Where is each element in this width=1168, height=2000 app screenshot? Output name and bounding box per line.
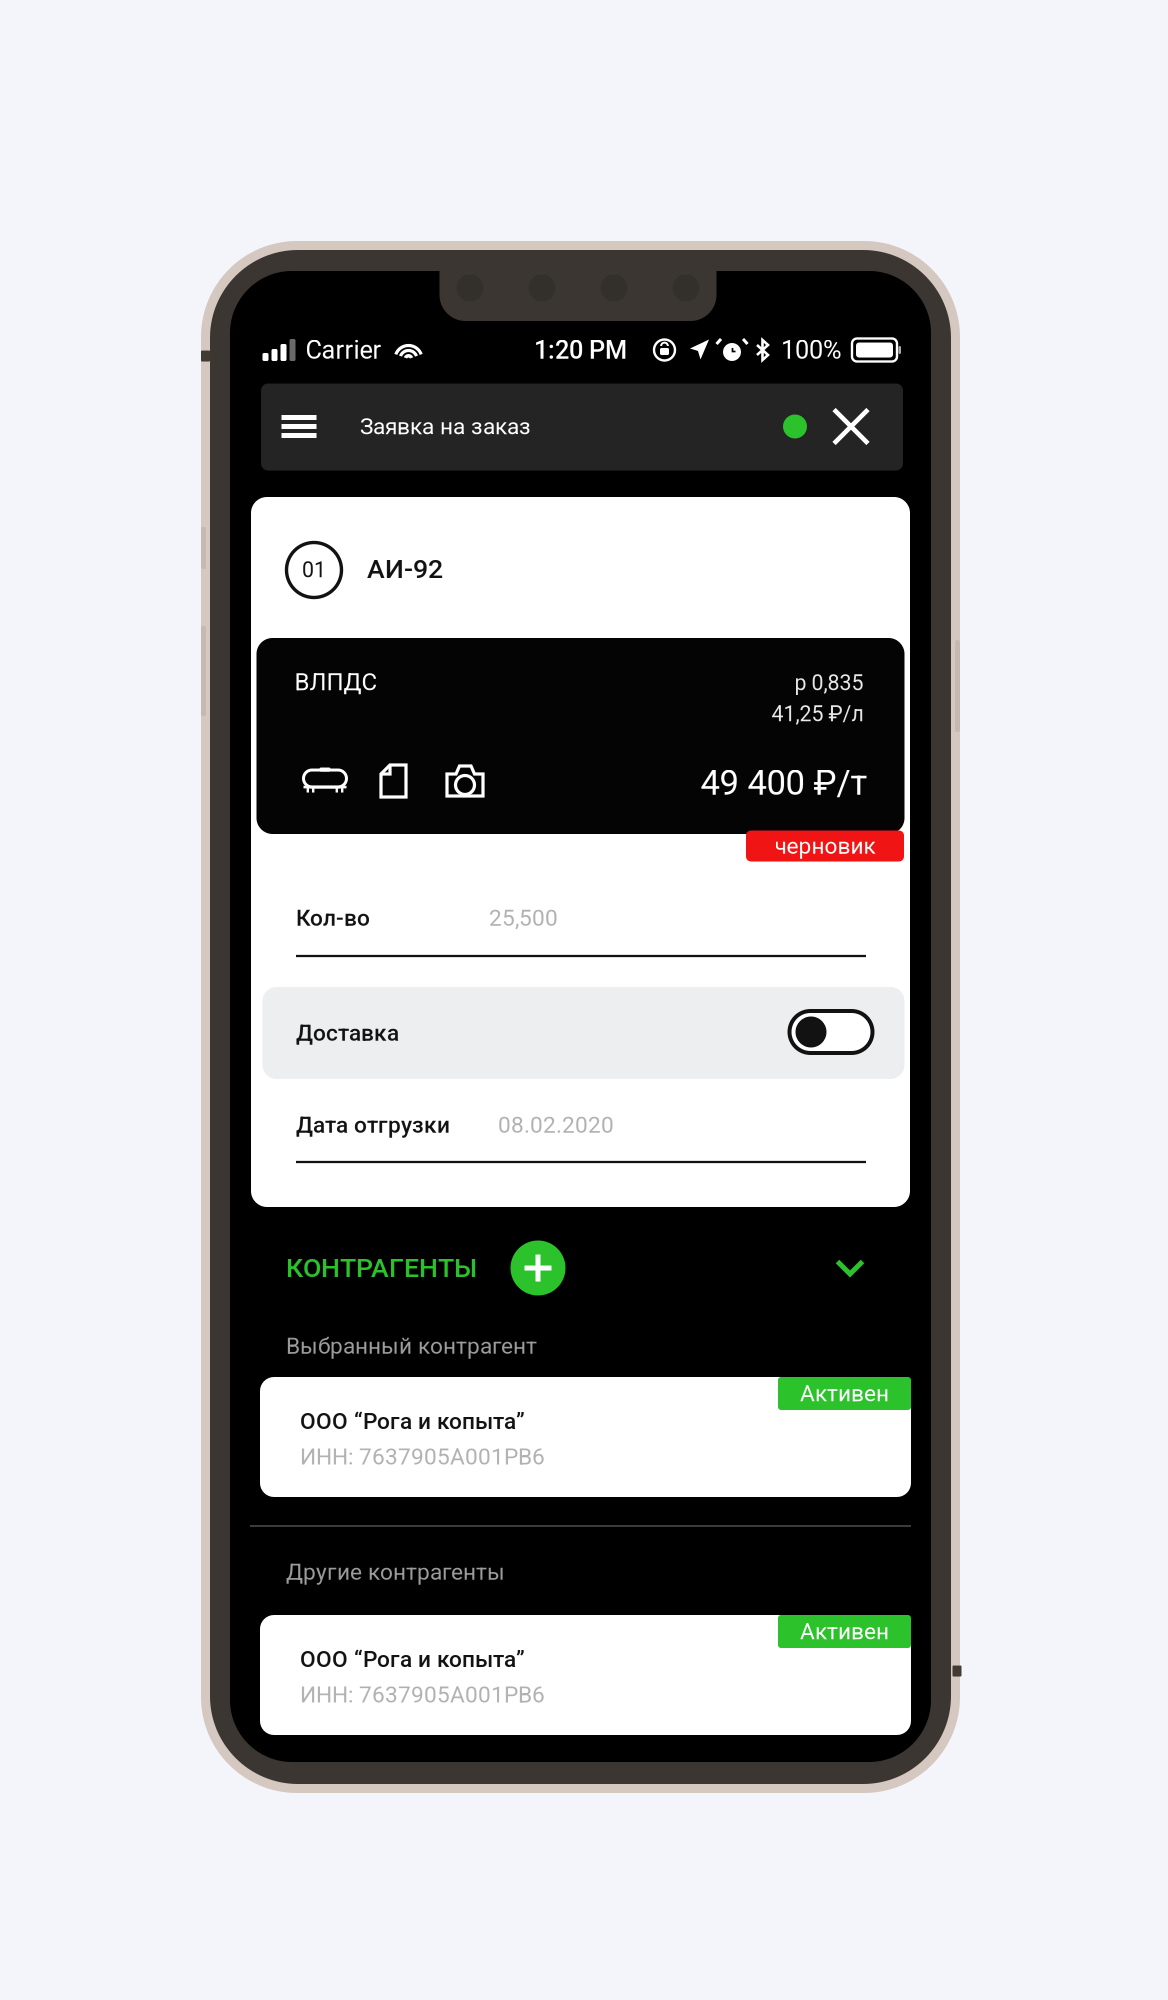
staticText: 100% [781,335,842,365]
staticText: р 0,835 [794,670,863,695]
staticText: Активен [800,1380,889,1407]
staticText: Выбранный контрагент [286,1333,537,1359]
staticText: ВЛПДС [294,668,377,696]
staticText: Активен [800,1618,889,1645]
staticText: Кол-во [296,905,370,931]
staticText: Carrier [305,335,381,365]
staticText: 41,25 ₽/л [771,701,863,726]
staticText: 01 [302,557,326,582]
staticText: Заявка на заказ [360,413,531,440]
button[interactable]: ООО “Рога и копыта” [260,1615,911,1735]
staticText: 49 400 ₽/т [700,763,867,803]
button[interactable]: Доставка [789,1011,872,1053]
button[interactable]: Добавить контрагента [510,1240,565,1295]
button[interactable]: ООО “Рога и копыта” [260,1377,911,1497]
staticText: черновик [774,833,875,859]
staticText: 1:20 PM [534,335,627,365]
button[interactable]: Меню [268,395,330,457]
staticText: ИНН: 7637905A001PB6 [300,1681,545,1708]
staticText: ООО “Рога и копыта” [300,1408,525,1434]
staticText: Дата отгрузки [296,1112,450,1138]
staticText: АИ-92 [367,553,443,585]
staticText: Другие контрагенты [286,1559,505,1585]
staticText: ООО “Рога и копыта” [300,1646,525,1672]
staticText: Доставка [296,1020,399,1046]
staticText: КОНТРАГЕНТЫ [286,1252,477,1284]
staticText: 25,500 [489,905,558,931]
button[interactable]: Закрыть [823,398,879,454]
button[interactable]: Свернуть [824,1245,876,1291]
staticText: ИНН: 7637905A001PB6 [300,1443,545,1470]
staticText: 08.02.2020 [498,1112,614,1138]
